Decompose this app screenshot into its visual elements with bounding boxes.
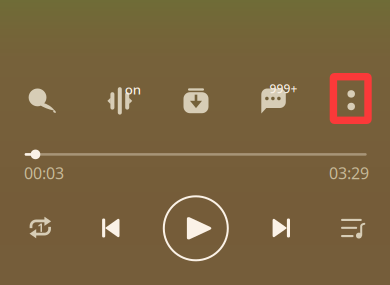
button[interactable]: Play — [162, 194, 230, 262]
button[interactable]: Download — [174, 79, 218, 123]
button[interactable]: Next track — [259, 206, 303, 250]
button[interactable]: Audio effects on — [96, 74, 144, 122]
button[interactable]: More options — [329, 71, 373, 125]
button[interactable]: Repeat one — [18, 205, 62, 249]
button[interactable]: Karaoke — [18, 77, 66, 125]
staticText: on — [125, 80, 141, 98]
staticText: 999+ — [270, 80, 298, 96]
button[interactable]: Comments, 999 plus — [253, 74, 301, 122]
button[interactable]: Previous track — [89, 206, 133, 250]
staticText: 03:29 — [329, 162, 369, 184]
button[interactable]: Play queue — [331, 207, 375, 251]
staticText: 00:03 — [24, 162, 64, 184]
